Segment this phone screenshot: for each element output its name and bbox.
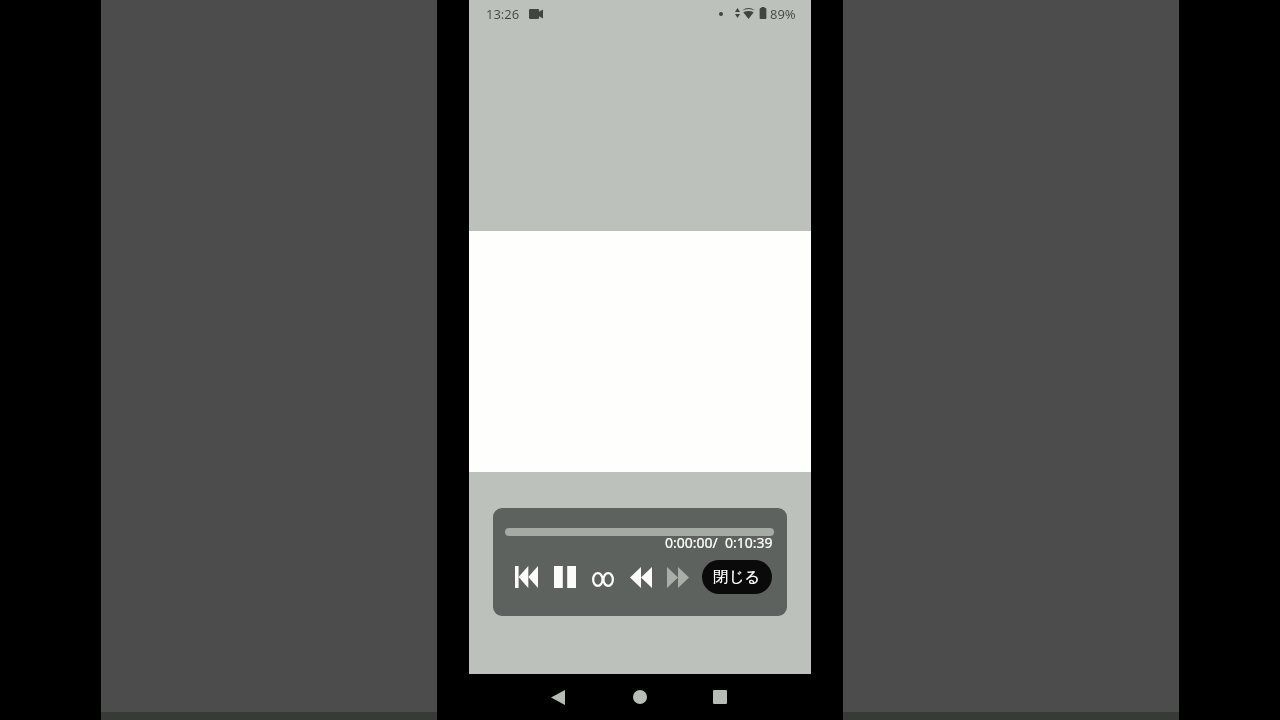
staticText: 89% <box>770 5 796 23</box>
staticText: 0:00:00/ 0:10:39 <box>665 533 773 552</box>
button[interactable]: Repeat <box>592 564 614 590</box>
staticText: 閉じる <box>713 567 761 587</box>
staticText: 13:26 <box>486 5 520 23</box>
button[interactable]: Pause <box>550 562 579 592</box>
button[interactable]: Home <box>618 675 662 719</box>
button[interactable]: 閉じる <box>702 560 772 594</box>
button[interactable]: Previous track <box>511 562 541 592</box>
button[interactable]: Back <box>536 675 580 719</box>
button[interactable]: Rewind <box>626 562 656 592</box>
button[interactable]: Recent apps <box>698 675 742 719</box>
button[interactable]: Fast forward <box>663 562 693 592</box>
